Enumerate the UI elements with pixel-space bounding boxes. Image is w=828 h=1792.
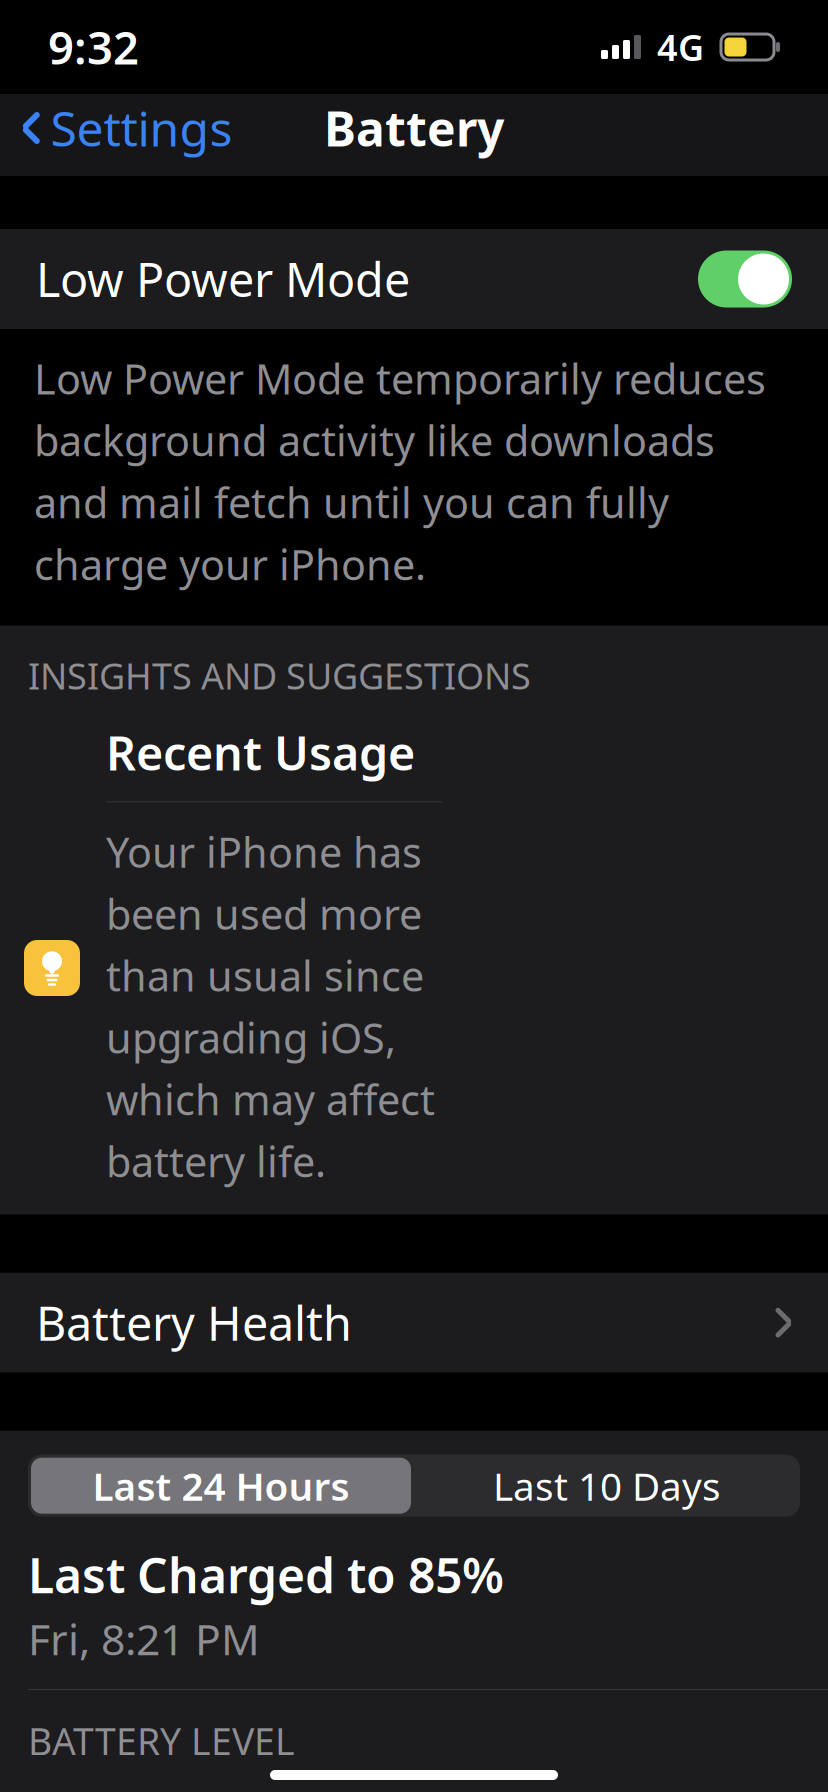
staticText: Low Power Mode [36,248,410,310]
staticText: Recent Usage [106,721,415,783]
staticText: Battery Health [36,1292,352,1354]
staticText: BATTERY LEVEL [28,1716,295,1766]
button[interactable]: Battery Health [0,1273,828,1373]
staticText: Last 24 Hours [92,1460,349,1511]
staticText: 9:32 [48,17,139,77]
button[interactable]: Last 24 Hours [28,1455,414,1517]
staticText: Last 10 Days [493,1460,721,1511]
staticText: Low Power Mode temporarily reduces backg… [34,351,766,592]
button[interactable]: Last 10 Days [414,1455,800,1517]
staticText: 4G [657,23,704,71]
staticText: Fri, 8:21 PM [28,1610,260,1667]
staticText: Battery [324,96,504,160]
staticText: Last Charged to 85% [28,1543,504,1606]
staticText: INSIGHTS AND SUGGESTIONS [28,652,531,699]
staticText: Settings [51,96,233,160]
staticText: Your iPhone has been used more than usua… [106,824,435,1189]
button[interactable]: Settings [0,86,255,170]
button[interactable]: Low Power Mode [0,229,828,329]
